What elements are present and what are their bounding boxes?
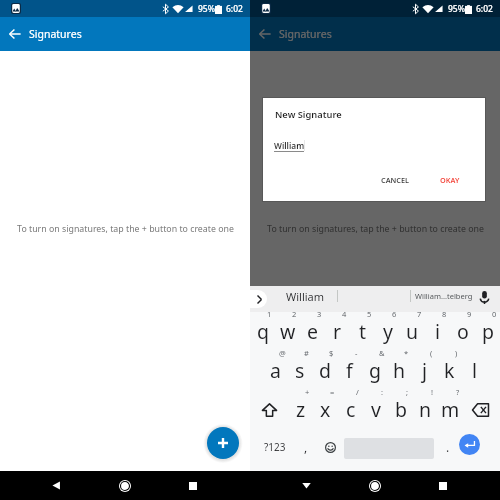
staticText: y — [383, 318, 393, 345]
staticText: g — [369, 357, 381, 384]
button[interactable]: Enter — [459, 434, 480, 455]
button[interactable]: s — [287, 353, 312, 383]
staticText: ) — [455, 348, 458, 358]
button[interactable]: Add signature — [207, 427, 239, 459]
button[interactable]: j — [412, 353, 437, 383]
button[interactable]: OKAY — [434, 171, 466, 189]
staticText: 9 — [467, 309, 472, 319]
button[interactable]: Shift — [254, 392, 284, 422]
button[interactable]: y — [375, 314, 400, 344]
button[interactable]: More suggestions — [241, 290, 267, 308]
staticText: k — [444, 357, 455, 384]
staticText: o — [457, 318, 469, 345]
staticText: ? — [456, 387, 460, 397]
button[interactable]: Voice input — [476, 289, 492, 305]
button[interactable]: ?123 — [258, 432, 292, 462]
button[interactable]: v — [363, 392, 388, 422]
button[interactable]: n — [413, 392, 438, 422]
staticText: 6:02 — [226, 3, 243, 15]
staticText: d — [319, 357, 331, 384]
staticText: , — [304, 439, 308, 455]
button[interactable]: w — [275, 314, 300, 344]
button[interactable]: William — [286, 289, 325, 304]
button[interactable]: u — [400, 314, 425, 344]
staticText: u — [406, 318, 419, 345]
staticText: 5 — [367, 309, 372, 319]
button[interactable]: , — [295, 432, 317, 462]
button[interactable]: o — [450, 314, 475, 344]
button[interactable]: m — [438, 392, 463, 422]
button[interactable]: t — [350, 314, 375, 344]
staticText: - — [355, 348, 358, 358]
button[interactable]: a — [263, 353, 287, 383]
staticText: 0 — [492, 309, 497, 319]
staticText: CANCEL — [381, 175, 410, 185]
button[interactable]: z — [288, 392, 313, 422]
staticText: i — [435, 318, 441, 345]
button[interactable]: p — [475, 314, 500, 344]
button[interactable]: . — [436, 432, 460, 462]
staticText: w — [280, 318, 296, 345]
button[interactable]: Home — [113, 474, 137, 497]
button[interactable]: Emoji — [318, 432, 342, 462]
staticText: ( — [430, 348, 433, 358]
button[interactable]: f — [337, 353, 362, 383]
staticText: 6 — [392, 309, 397, 319]
staticText: 8 — [442, 309, 447, 319]
staticText: = — [330, 387, 335, 397]
staticText: c — [346, 396, 356, 423]
staticText: + — [305, 387, 310, 397]
staticText: q — [257, 318, 269, 345]
button[interactable]: h — [387, 353, 412, 383]
staticText: OKAY — [440, 175, 460, 185]
staticText: Signatures — [279, 27, 332, 41]
button[interactable]: Recents — [431, 474, 455, 497]
button[interactable]: Home — [363, 474, 387, 497]
button[interactable]: e — [300, 314, 325, 344]
button[interactable]: b — [388, 392, 413, 422]
button[interactable]: Back — [44, 474, 68, 497]
button[interactable]: Backspace — [465, 392, 495, 422]
staticText: ; — [406, 387, 409, 397]
staticText: William — [274, 140, 305, 151]
staticText: n — [419, 396, 432, 423]
button[interactable]: CANCEL — [375, 171, 416, 189]
staticText: 95% — [198, 3, 215, 15]
staticText: # — [304, 348, 309, 358]
button[interactable]: k — [437, 353, 462, 383]
button[interactable]: q — [250, 314, 275, 344]
staticText: & — [379, 348, 385, 358]
button[interactable]: c — [338, 392, 363, 422]
button[interactable]: d — [312, 353, 337, 383]
staticText: @ — [279, 348, 286, 358]
staticText: z — [296, 396, 306, 423]
button[interactable]: Recents — [181, 474, 205, 497]
staticText: 7 — [417, 309, 422, 319]
staticText: / — [356, 387, 359, 397]
button[interactable]: Hide keyboard — [294, 474, 318, 497]
button[interactable]: Back — [3, 22, 27, 46]
button[interactable]: i — [425, 314, 450, 344]
staticText: a — [270, 357, 281, 384]
staticText: . — [446, 439, 450, 455]
staticText: b — [395, 396, 407, 423]
staticText: j — [422, 357, 428, 384]
button[interactable]: l — [462, 353, 487, 383]
button[interactable]: William...telberg — [415, 291, 473, 301]
staticText: Signatures — [29, 27, 82, 41]
staticText: To turn on signatures, tap the + button … — [17, 223, 234, 235]
staticText: p — [482, 318, 494, 345]
button[interactable]: x — [313, 392, 338, 422]
staticText: ?123 — [264, 440, 286, 454]
staticText: e — [307, 318, 318, 345]
staticText: m — [441, 396, 460, 423]
button[interactable]: g — [362, 353, 387, 383]
staticText: r — [333, 318, 342, 345]
staticText: 3 — [317, 309, 322, 319]
button[interactable]: r — [325, 314, 350, 344]
staticText: 95% — [448, 3, 465, 15]
button[interactable]: Back — [253, 22, 277, 46]
staticText: To turn on signatures, tap the + button … — [267, 223, 484, 235]
staticText: l — [472, 357, 478, 384]
